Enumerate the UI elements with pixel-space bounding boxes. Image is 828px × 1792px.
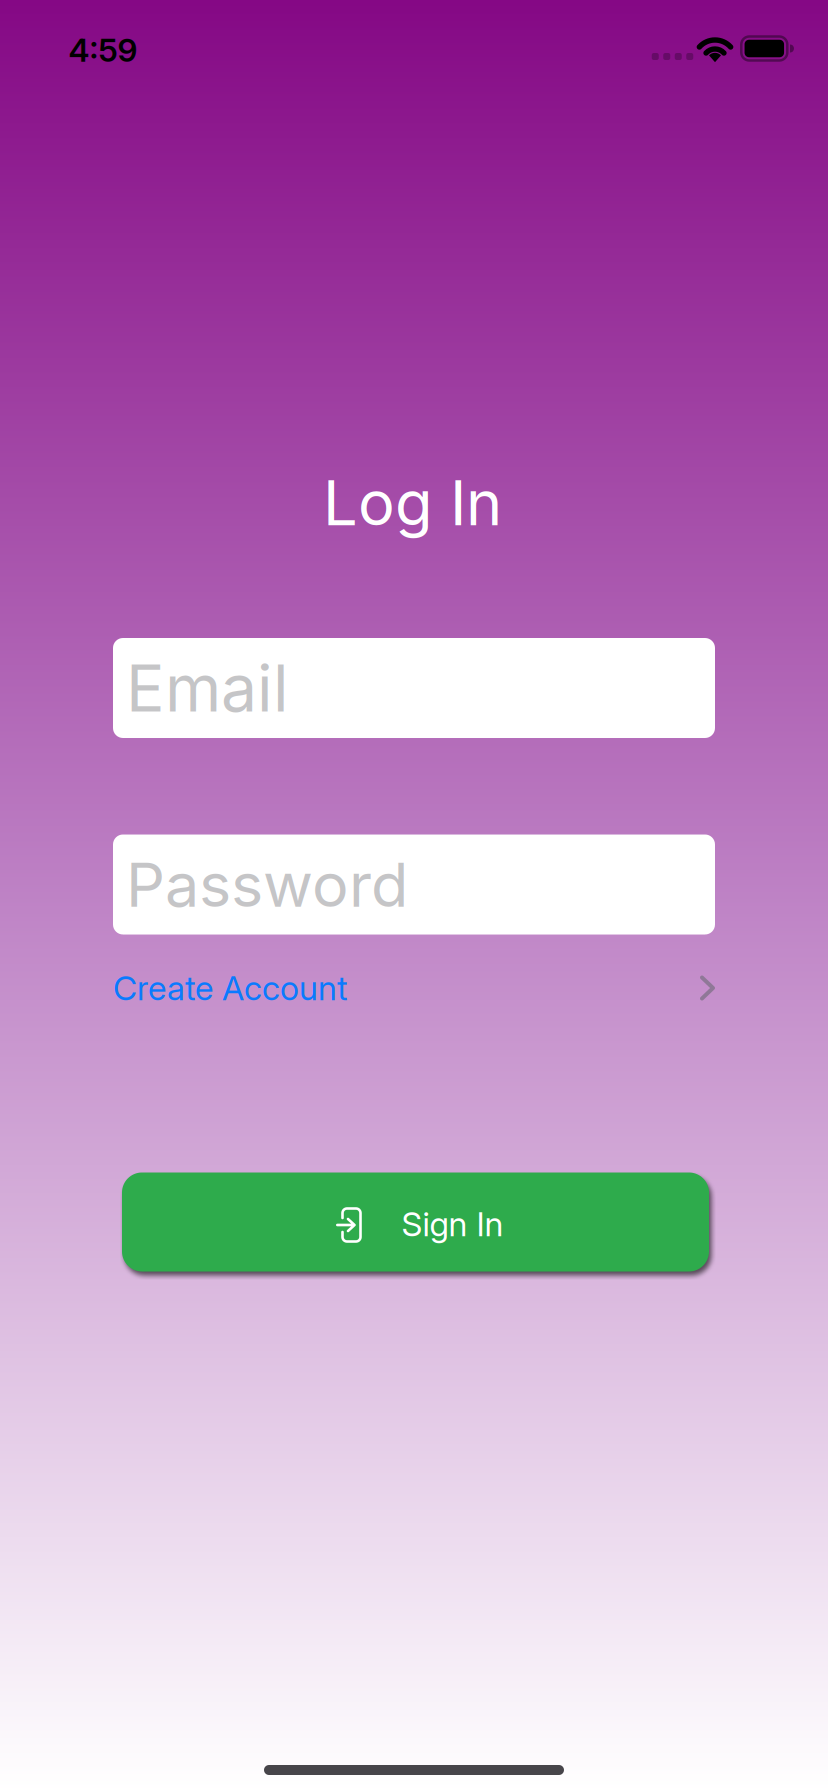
staticText: Email <box>126 649 289 727</box>
button[interactable]: Sign In <box>122 1172 709 1271</box>
staticText: Create Account <box>113 968 348 1008</box>
button[interactable]: Create Account <box>113 966 715 1010</box>
staticText: Password <box>126 848 408 921</box>
staticText: 4:59 <box>68 31 137 69</box>
staticText: Log In <box>323 466 502 540</box>
staticText: Sign In <box>401 1204 503 1244</box>
